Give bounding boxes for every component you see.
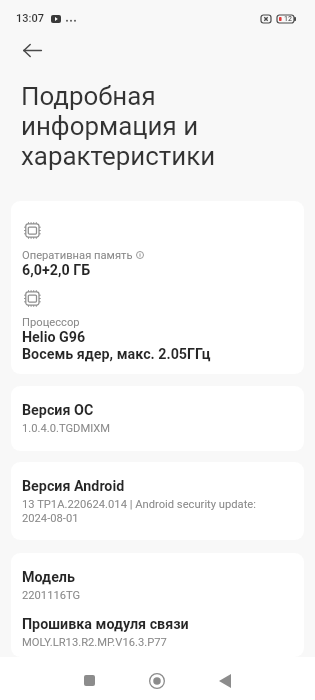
staticText: 13:07: [16, 12, 44, 25]
button[interactable]: Home: [123, 657, 191, 700]
staticText: Прошивка модуля связи: [22, 616, 189, 633]
button[interactable]: Back: [191, 657, 259, 700]
staticText: Оперативная память: [22, 248, 133, 262]
button[interactable]: Оперативная память: [11, 201, 304, 374]
staticText: 6,0+2,0 ГБ: [22, 262, 91, 279]
staticText: Helio G96: [22, 329, 86, 346]
staticText: Модель: [22, 569, 75, 586]
button[interactable]: Recents: [55, 657, 123, 700]
button[interactable]: Back: [22, 36, 43, 64]
staticText: 13 TP1A.220624.014 | Android security up…: [22, 497, 291, 525]
button[interactable]: Модель: [11, 553, 304, 657]
staticText: Восемь ядер, макс. 2.05ГГц: [22, 346, 211, 363]
staticText: Версия ОС: [22, 402, 94, 419]
staticText: Подробная информация и характеристики: [21, 81, 240, 171]
staticText: 2201116TG: [22, 588, 81, 602]
button[interactable]: Версия ОС: [11, 386, 304, 451]
button[interactable]: Версия Android: [11, 462, 304, 540]
staticText: Процессор: [22, 315, 80, 329]
staticText: Версия Android: [22, 478, 125, 495]
staticText: 1.0.4.0.TGDMIXM: [22, 421, 111, 435]
staticText: 12: [284, 15, 292, 23]
staticText: MOLY.LR13.R2.MP.V16.3.P77: [22, 635, 167, 649]
